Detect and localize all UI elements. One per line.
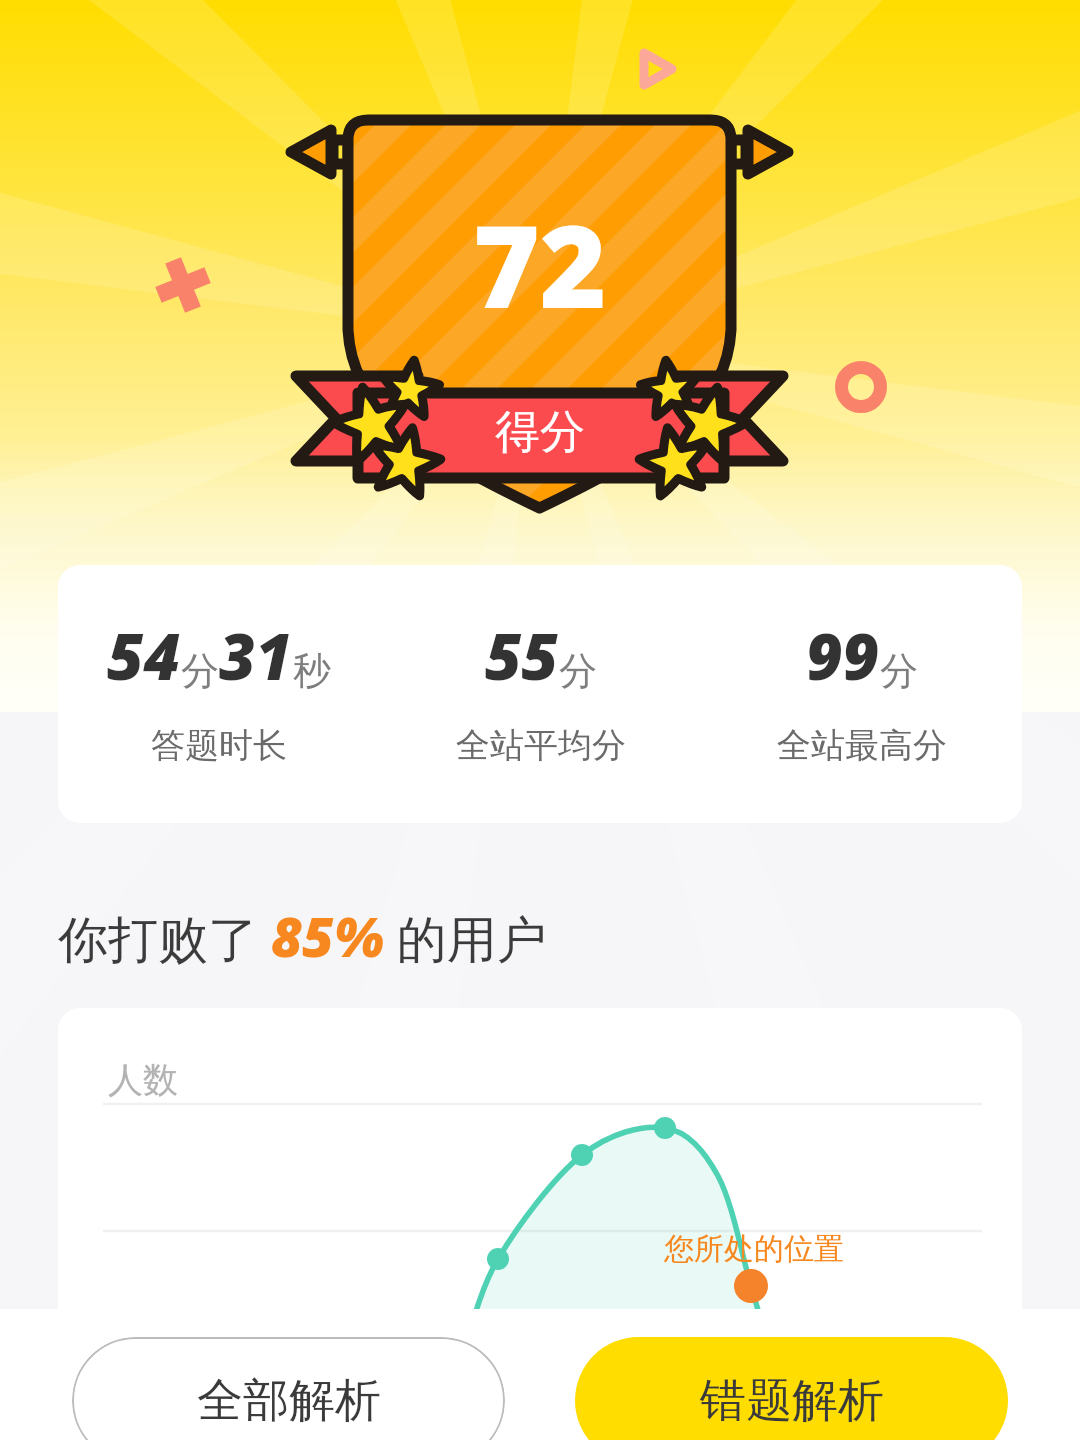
staticText: 分 [181,647,219,695]
staticText: 全站最高分 [777,724,947,767]
button[interactable]: 错题解析 [575,1337,1008,1440]
staticText: 分 [559,647,597,695]
staticText: 全站平均分 [456,724,626,767]
staticText: 你打败了 85% 的用户 [58,899,547,973]
staticText: 得分 [495,404,585,461]
staticText: 您所处的位置 [664,1230,844,1268]
staticText: 秒 [293,647,331,695]
staticText: 72 [473,186,607,341]
staticText: 全部解析 [197,1372,381,1430]
staticText: 错题解析 [700,1372,884,1430]
staticText: 人数 [108,1058,178,1102]
staticText: 31 [219,613,293,699]
staticText: 55 [485,613,559,699]
staticText: 54 [107,613,181,699]
staticText: 分 [880,647,918,695]
staticText: 答题时长 [151,724,287,767]
button[interactable]: 全部解析 [72,1337,505,1440]
staticText: 99 [806,613,880,699]
